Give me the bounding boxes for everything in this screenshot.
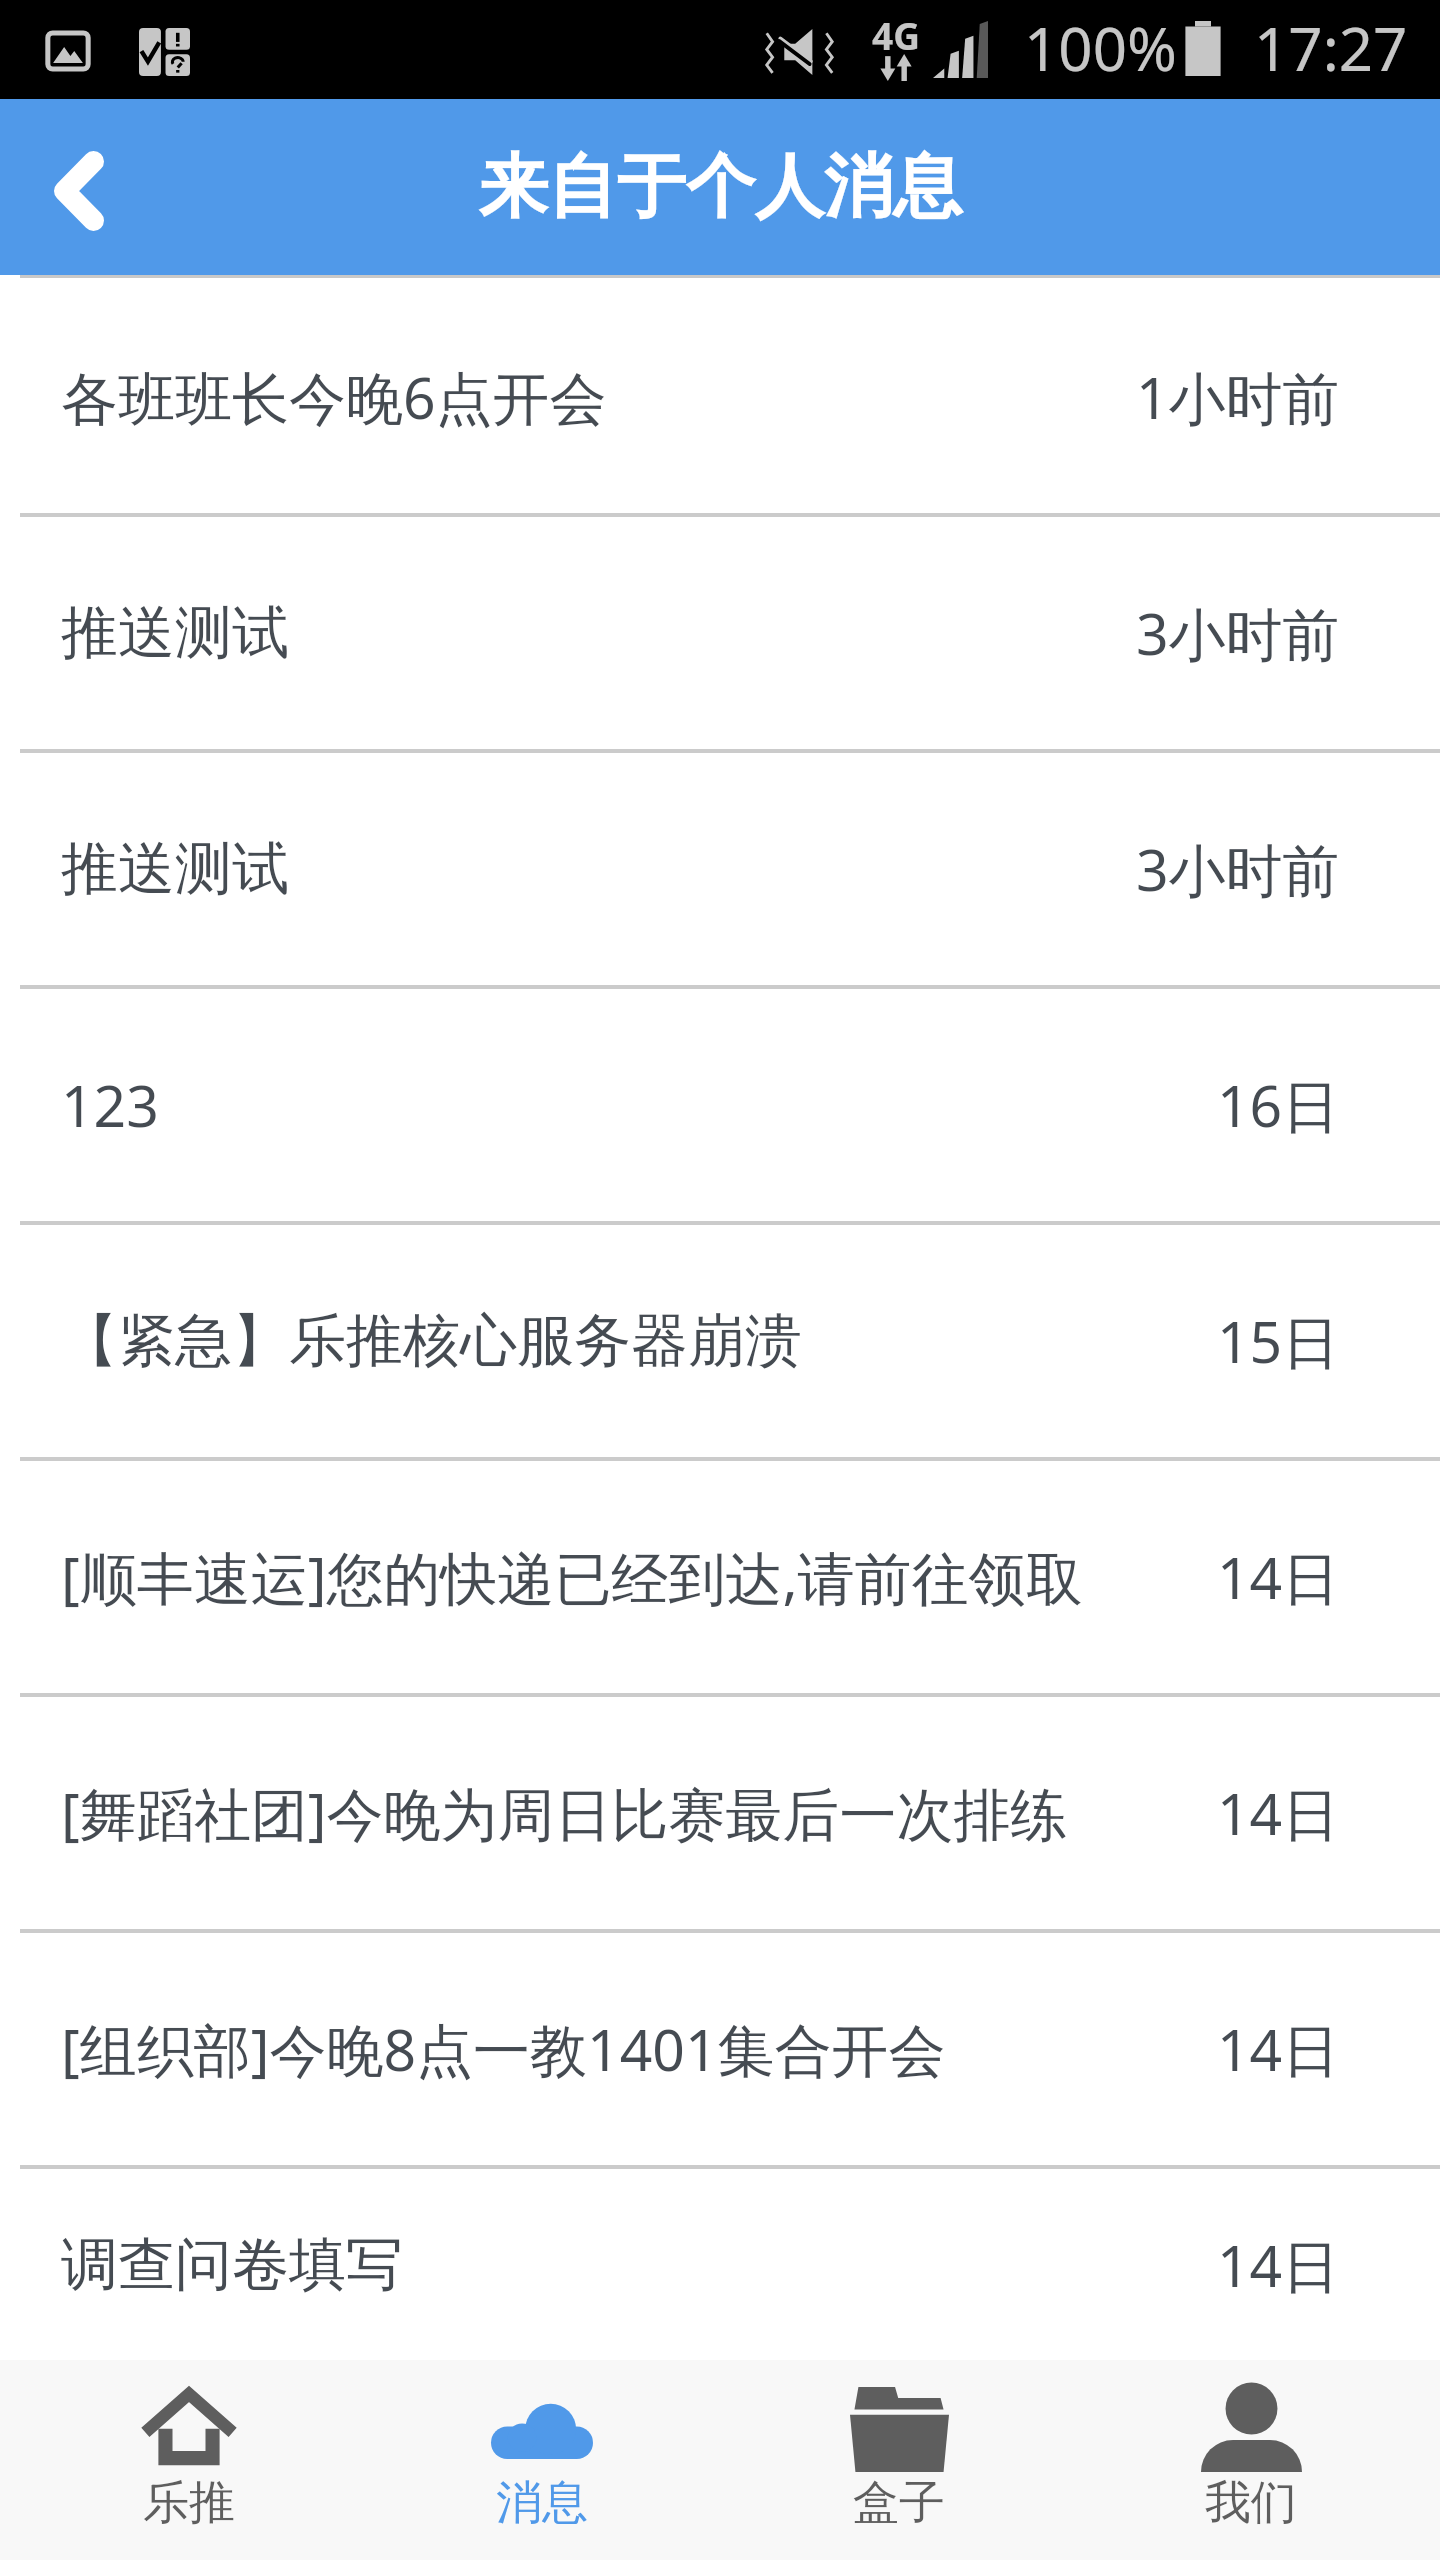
staticText: 推送测试: [61, 597, 1136, 669]
button[interactable]: 乐推: [0, 2360, 360, 2560]
staticText: 3小时前: [1136, 830, 1340, 908]
button[interactable]: [顺丰速运]您的快递已经到达,请前往领取: [0, 1461, 1440, 1697]
button[interactable]: Back: [19, 126, 139, 256]
button[interactable]: 消息: [360, 2360, 720, 2560]
staticText: 来自于个人消息: [479, 144, 962, 231]
button[interactable]: [舞蹈社团]今晚为周日比赛最后一次排练: [0, 1697, 1440, 1933]
staticText: 乐推: [143, 2474, 235, 2532]
staticText: 15日: [1217, 1302, 1340, 1380]
staticText: 各班班长今晚6点开会: [61, 358, 1136, 436]
staticText: 14日: [1217, 1774, 1340, 1852]
staticText: [舞蹈社团]今晚为周日比赛最后一次排练: [61, 1774, 1217, 1852]
staticText: [顺丰速运]您的快递已经到达,请前往领取: [61, 1538, 1217, 1616]
button[interactable]: 推送测试: [0, 753, 1440, 989]
staticText: 14日: [1217, 2226, 1340, 2304]
staticText: 14日: [1217, 1538, 1340, 1616]
button[interactable]: 推送测试: [0, 517, 1440, 753]
staticText: 4G: [872, 10, 920, 60]
button[interactable]: 123: [0, 989, 1440, 1225]
staticText: 14日: [1217, 2010, 1340, 2088]
staticText: 123: [61, 1066, 1217, 1144]
staticText: 1小时前: [1136, 358, 1340, 436]
button[interactable]: 【紧急】乐推核心服务器崩溃: [0, 1225, 1440, 1461]
staticText: 17:27: [1254, 7, 1408, 89]
staticText: 16日: [1217, 1066, 1340, 1144]
staticText: [组织部]今晚8点一教1401集合开会: [61, 2010, 1217, 2088]
button[interactable]: 我们: [1080, 2360, 1440, 2560]
button[interactable]: 盒子: [720, 2360, 1080, 2560]
staticText: 3小时前: [1136, 594, 1340, 672]
staticText: 100%: [1024, 7, 1177, 89]
staticText: 消息: [496, 2474, 588, 2532]
button[interactable]: 各班班长今晚6点开会: [0, 281, 1440, 517]
staticText: 盒子: [853, 2474, 945, 2532]
staticText: 推送测试: [61, 833, 1136, 905]
staticText: 我们: [1205, 2474, 1297, 2532]
button[interactable]: [组织部]今晚8点一教1401集合开会: [0, 1933, 1440, 2169]
staticText: 调查问卷填写: [61, 2229, 1217, 2301]
button[interactable]: 调查问卷填写: [0, 2169, 1440, 2360]
staticText: 【紧急】乐推核心服务器崩溃: [61, 1305, 1217, 1377]
